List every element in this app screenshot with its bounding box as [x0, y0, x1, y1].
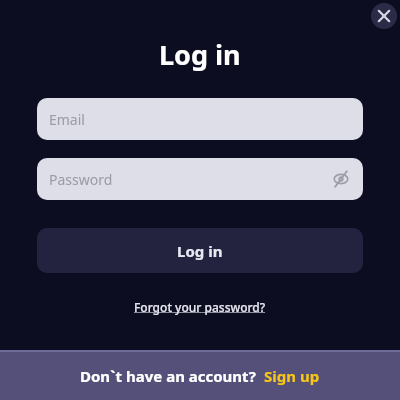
staticText: Sign up: [264, 366, 320, 386]
staticText: Email: [49, 110, 85, 129]
staticText: Forgot your password?: [134, 299, 266, 315]
button[interactable]: Sign up: [264, 366, 320, 386]
button[interactable]: Show password: [331, 169, 351, 189]
button[interactable]: Forgot your password?: [130, 295, 270, 319]
staticText: Log in: [177, 241, 223, 261]
button[interactable]: Password: [37, 158, 363, 200]
staticText: Don`t have an account?: [80, 366, 256, 386]
button[interactable]: Close: [371, 3, 397, 29]
button[interactable]: Email: [37, 98, 363, 140]
staticText: Password: [49, 170, 113, 189]
button[interactable]: Log in: [37, 228, 363, 273]
staticText: Log in: [159, 36, 241, 73]
